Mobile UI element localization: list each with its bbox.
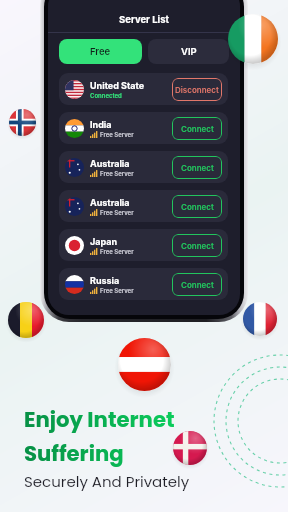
staticText: India: [90, 119, 112, 130]
button[interactable]: Australia: [59, 190, 228, 222]
staticText: Free Server: [100, 248, 134, 255]
button[interactable]: India: [59, 112, 228, 144]
staticText: Free Server: [100, 170, 134, 177]
staticText: Enjoy Internet: [24, 405, 175, 435]
staticText: VIP: [181, 46, 197, 57]
button[interactable]: VIP: [148, 39, 229, 64]
button[interactable]: Australia: [59, 151, 228, 183]
button[interactable]: Connect: [172, 195, 222, 218]
staticText: Suffering: [24, 439, 124, 469]
staticText: Australia: [90, 158, 130, 169]
button[interactable]: Free: [59, 39, 142, 64]
staticText: Free Server: [100, 287, 134, 294]
staticText: Free Server: [100, 209, 134, 216]
staticText: Connect: [181, 241, 214, 251]
staticText: Connected: [90, 92, 122, 99]
button[interactable]: Connect: [172, 117, 222, 140]
staticText: Securely And Privately: [24, 471, 190, 492]
button[interactable]: Connect: [172, 273, 222, 296]
staticText: Connect: [181, 163, 214, 173]
staticText: Free Server: [100, 131, 134, 138]
staticText: Connect: [181, 202, 214, 212]
button[interactable]: United State: [59, 73, 228, 105]
staticText: Australia: [90, 197, 130, 208]
staticText: Connect: [181, 124, 214, 134]
button[interactable]: Russia: [59, 268, 228, 300]
staticText: Disconnect: [175, 85, 219, 95]
staticText: Japan: [90, 236, 118, 247]
staticText: Server List: [119, 14, 169, 25]
button[interactable]: Japan: [59, 229, 228, 261]
staticText: Russia: [90, 275, 120, 286]
staticText: Connect: [181, 280, 214, 290]
button[interactable]: Disconnect: [172, 78, 222, 101]
staticText: Free: [90, 46, 111, 57]
button[interactable]: Connect: [172, 156, 222, 179]
staticText: United State: [90, 80, 145, 91]
button[interactable]: Connect: [172, 234, 222, 257]
